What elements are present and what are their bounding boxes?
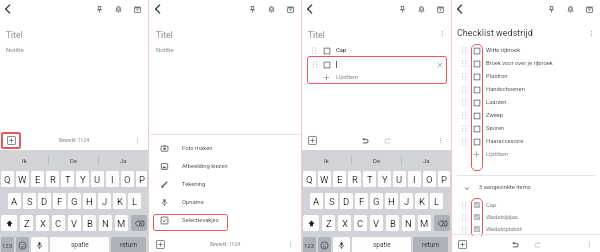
button[interactable]: W (318, 171, 331, 187)
button[interactable]: E (31, 171, 44, 187)
button[interactable]: Ik (0, 150, 48, 171)
button[interactable]: return (111, 237, 146, 252)
button[interactable]: Emoji (318, 237, 331, 252)
button[interactable]: Q (1, 171, 14, 187)
button[interactable]: Laarzen (452, 96, 600, 109)
button[interactable]: Back (151, 2, 165, 16)
button[interactable]: Shift (1, 215, 17, 231)
button[interactable]: W (16, 171, 29, 187)
button[interactable]: R (348, 171, 361, 187)
button[interactable]: B (83, 215, 96, 231)
button[interactable]: Add (456, 238, 469, 251)
button[interactable]: De (352, 150, 401, 171)
button[interactable]: M (418, 215, 431, 231)
button[interactable]: 123 (303, 237, 316, 252)
button[interactable]: P (136, 171, 147, 187)
button[interactable]: M (115, 215, 128, 231)
button[interactable]: X (36, 215, 49, 231)
button[interactable]: Z (322, 215, 335, 231)
button[interactable]: 123 (1, 237, 14, 252)
button[interactable]: N (99, 215, 112, 231)
button[interactable]: Pin (92, 2, 106, 16)
button[interactable]: P (438, 171, 450, 187)
button[interactable]: Lijstitem (452, 148, 600, 161)
button[interactable]: A (8, 193, 21, 209)
button[interactable]: H (83, 193, 96, 209)
button[interactable]: Selectievakjes (150, 211, 301, 229)
button[interactable]: V (370, 215, 383, 231)
button[interactable]: G (370, 193, 383, 209)
button[interactable]: O (121, 171, 134, 187)
button[interactable]: Backspace (434, 215, 450, 231)
button[interactable]: Reminder (111, 2, 125, 16)
button[interactable]: Back (1, 2, 15, 16)
button[interactable]: Add (154, 238, 167, 251)
button[interactable]: G (68, 193, 81, 209)
button[interactable]: Backspace (131, 215, 147, 231)
button[interactable]: Broek voor over je rijbroek (452, 57, 600, 70)
button[interactable]: Reminder (264, 2, 278, 16)
button[interactable]: Redo (531, 238, 544, 251)
button[interactable]: L (430, 193, 443, 209)
button[interactable]: Opname (150, 193, 301, 211)
button[interactable]: B (386, 215, 399, 231)
button[interactable]: Remove item (435, 60, 444, 69)
button[interactable]: J (98, 193, 111, 209)
button[interactable]: Pin (395, 2, 409, 16)
button[interactable]: Archive (130, 2, 144, 16)
button[interactable]: Undo (509, 238, 522, 251)
button[interactable]: Y (76, 171, 89, 187)
button[interactable]: N (402, 215, 415, 231)
button[interactable]: Cap (302, 44, 451, 57)
button[interactable]: Undo (359, 134, 372, 147)
button[interactable]: Q (303, 171, 316, 187)
button[interactable]: Handschoenen (452, 83, 600, 96)
button[interactable]: Shift (303, 215, 319, 231)
button[interactable]: Redo (381, 134, 394, 147)
button[interactable]: Lijstitem (302, 71, 451, 84)
button[interactable]: U (91, 171, 104, 187)
button[interactable]: X (338, 215, 351, 231)
button[interactable]: S (325, 193, 338, 209)
button[interactable]: Zweep (452, 109, 600, 122)
button[interactable]: Witte rijbroek (452, 44, 600, 57)
button[interactable]: More options (284, 238, 297, 251)
button[interactable]: More options (434, 134, 447, 147)
button[interactable]: K (415, 193, 428, 209)
button[interactable]: U (393, 171, 406, 187)
button[interactable]: Reminder (563, 2, 577, 16)
button[interactable]: Y (378, 171, 391, 187)
button[interactable]: spatie (352, 237, 411, 252)
button[interactable]: Add (306, 134, 319, 147)
button[interactable]: More options (583, 238, 596, 251)
button[interactable]: Emoji (16, 237, 29, 252)
button[interactable]: De (49, 150, 98, 171)
button[interactable]: Archive (582, 2, 596, 16)
button[interactable]: D (38, 193, 51, 209)
button[interactable]: I (408, 171, 421, 187)
button[interactable]: C (52, 215, 65, 231)
button[interactable]: Z (20, 215, 33, 231)
button[interactable]: Wedstrijdshirt (452, 223, 600, 235)
button[interactable]: J (400, 193, 413, 209)
button[interactable]: F (355, 193, 368, 209)
button[interactable]: Afbeelding kiezen (150, 157, 301, 175)
button[interactable]: Archive (433, 2, 447, 16)
button[interactable]: More options (131, 134, 144, 147)
button[interactable]: Back (453, 2, 467, 16)
button[interactable]: R (46, 171, 59, 187)
button[interactable]: Haaraccesoire (452, 135, 600, 148)
button[interactable]: O (423, 171, 436, 187)
button[interactable]: I (106, 171, 119, 187)
button[interactable]: T (363, 171, 376, 187)
button[interactable]: Ja (99, 150, 148, 171)
button[interactable]: More options (436, 27, 448, 39)
button[interactable]: Pin (245, 2, 259, 16)
button[interactable]: D (340, 193, 353, 209)
button[interactable]: Archive (283, 2, 297, 16)
button[interactable]: A (310, 193, 323, 209)
button[interactable]: spatie (50, 237, 109, 252)
button[interactable]: F (53, 193, 66, 209)
button[interactable]: Pin (544, 2, 558, 16)
button[interactable]: H (385, 193, 398, 209)
